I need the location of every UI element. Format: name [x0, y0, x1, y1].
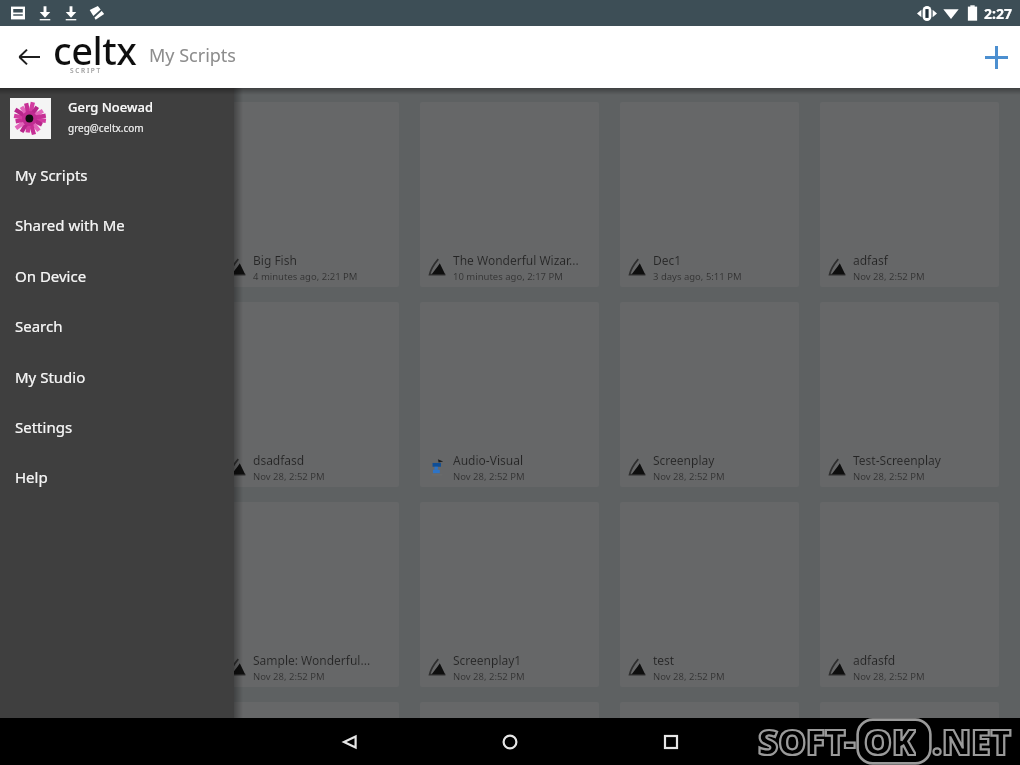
staticText: Audio-Visual: [453, 452, 523, 468]
staticText: Dec1: [653, 252, 682, 268]
staticText: The Wonderful Wizar...: [453, 252, 579, 268]
button[interactable]: Recent apps: [651, 718, 691, 765]
button[interactable]: Notes: [820, 702, 999, 765]
staticText: My Scripts: [15, 165, 88, 185]
button[interactable]: Dec1: [620, 102, 799, 287]
staticText: S C R I P T: [70, 66, 101, 75]
button[interactable]: test: [620, 502, 799, 687]
button[interactable]: Draft 2: [620, 702, 799, 765]
button[interactable]: dsadfasd: [220, 302, 399, 487]
button[interactable]: Scene List: [420, 702, 599, 765]
staticText: Search: [15, 316, 63, 336]
button[interactable]: adfasfd: [820, 502, 999, 687]
staticText: 10 minutes ago, 2:17 PM: [453, 270, 563, 283]
button[interactable]: Back: [12, 40, 46, 74]
staticText: SOFT-: [758, 718, 856, 765]
staticText: greg@celtx.com: [68, 121, 144, 135]
button[interactable]: Untitled: [220, 702, 399, 765]
button[interactable]: The Wonderful Wizar...: [420, 102, 599, 287]
staticText: Screenplay1: [453, 652, 522, 668]
staticText: Nov 28, 2:52 PM: [853, 470, 925, 483]
staticText: Sample: Wonderful...: [253, 652, 371, 668]
button[interactable]: On Device: [0, 251, 234, 301]
staticText: Shared with Me: [15, 215, 125, 235]
button[interactable]: My Studio: [0, 352, 234, 402]
staticText: Nov 28, 2:52 PM: [853, 270, 925, 283]
staticText: dsadfasd: [253, 452, 305, 468]
button[interactable]: Test-Screenplay: [820, 302, 999, 487]
staticText: OK: [864, 718, 916, 765]
staticText: Settings: [15, 417, 73, 437]
staticText: My Scripts: [149, 43, 236, 68]
button[interactable]: Big Fish: [220, 102, 399, 287]
staticText: 2:27: [984, 4, 1012, 23]
staticText: 3 days ago, 5:11 PM: [653, 270, 742, 283]
staticText: adfasfd: [853, 652, 896, 668]
other: Profile photo: [10, 98, 51, 139]
staticText: Nov 28, 2:52 PM: [453, 670, 525, 683]
button[interactable]: [0, 88, 234, 148]
button[interactable]: Shared with Me: [0, 200, 234, 250]
staticText: Nov 28, 2:52 PM: [653, 670, 725, 683]
staticText: Gerg Noewad: [68, 98, 153, 116]
staticText: test: [653, 652, 675, 668]
staticText: .NET: [932, 718, 1012, 765]
button[interactable]: Home: [490, 718, 530, 765]
button[interactable]: Sample: Wonderful...: [220, 502, 399, 687]
button[interactable]: My Scripts: [0, 150, 234, 200]
staticText: Help: [15, 467, 48, 487]
staticText: Screenplay: [653, 452, 715, 468]
staticText: Nov 28, 2:52 PM: [453, 470, 525, 483]
staticText: Nov 28, 2:52 PM: [853, 670, 925, 683]
button[interactable]: Settings: [0, 402, 234, 452]
staticText: Nov 28, 2:52 PM: [653, 470, 725, 483]
button[interactable]: Help: [0, 452, 234, 502]
staticText: Test-Screenplay: [853, 452, 941, 468]
staticText: Big Fish: [253, 252, 297, 268]
button[interactable]: Add new script: [973, 34, 1019, 80]
staticText: Nov 28, 2:52 PM: [253, 670, 325, 683]
button[interactable]: Search: [0, 301, 234, 351]
staticText: celtx: [53, 24, 137, 76]
staticText: 4 minutes ago, 2:21 PM: [253, 270, 358, 283]
staticText: Nov 28, 2:52 PM: [253, 470, 325, 483]
staticText: adfasf: [853, 252, 888, 268]
button[interactable]: Audio-Visual: [420, 302, 599, 487]
staticText: My Studio: [15, 367, 86, 387]
staticText: On Device: [15, 266, 87, 286]
button[interactable]: Back: [330, 718, 370, 765]
button[interactable]: Screenplay1: [420, 502, 599, 687]
button[interactable]: adfasf: [820, 102, 999, 287]
button[interactable]: Screenplay: [620, 302, 799, 487]
